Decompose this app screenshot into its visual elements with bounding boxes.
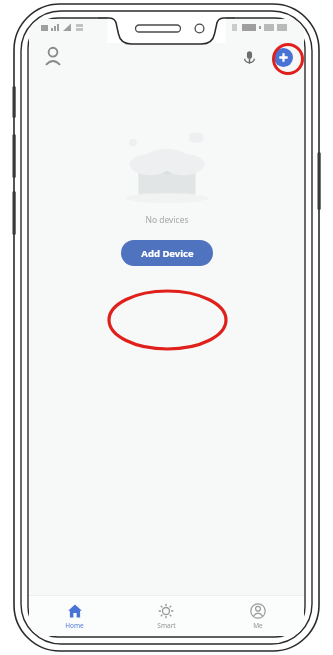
staticText: Add Device (141, 247, 194, 260)
staticText: Home (65, 621, 84, 630)
staticText: No devices (145, 214, 189, 226)
button[interactable]: Home (29, 596, 120, 636)
button[interactable]: Profile (37, 41, 69, 73)
button[interactable]: Smart (120, 596, 212, 636)
staticText: Me (253, 621, 263, 630)
button[interactable]: Me (212, 596, 304, 636)
button[interactable]: Add Device (121, 240, 213, 266)
staticText: Smart (157, 621, 176, 630)
button[interactable]: Add (268, 42, 298, 72)
button[interactable]: Voice input (234, 42, 264, 72)
